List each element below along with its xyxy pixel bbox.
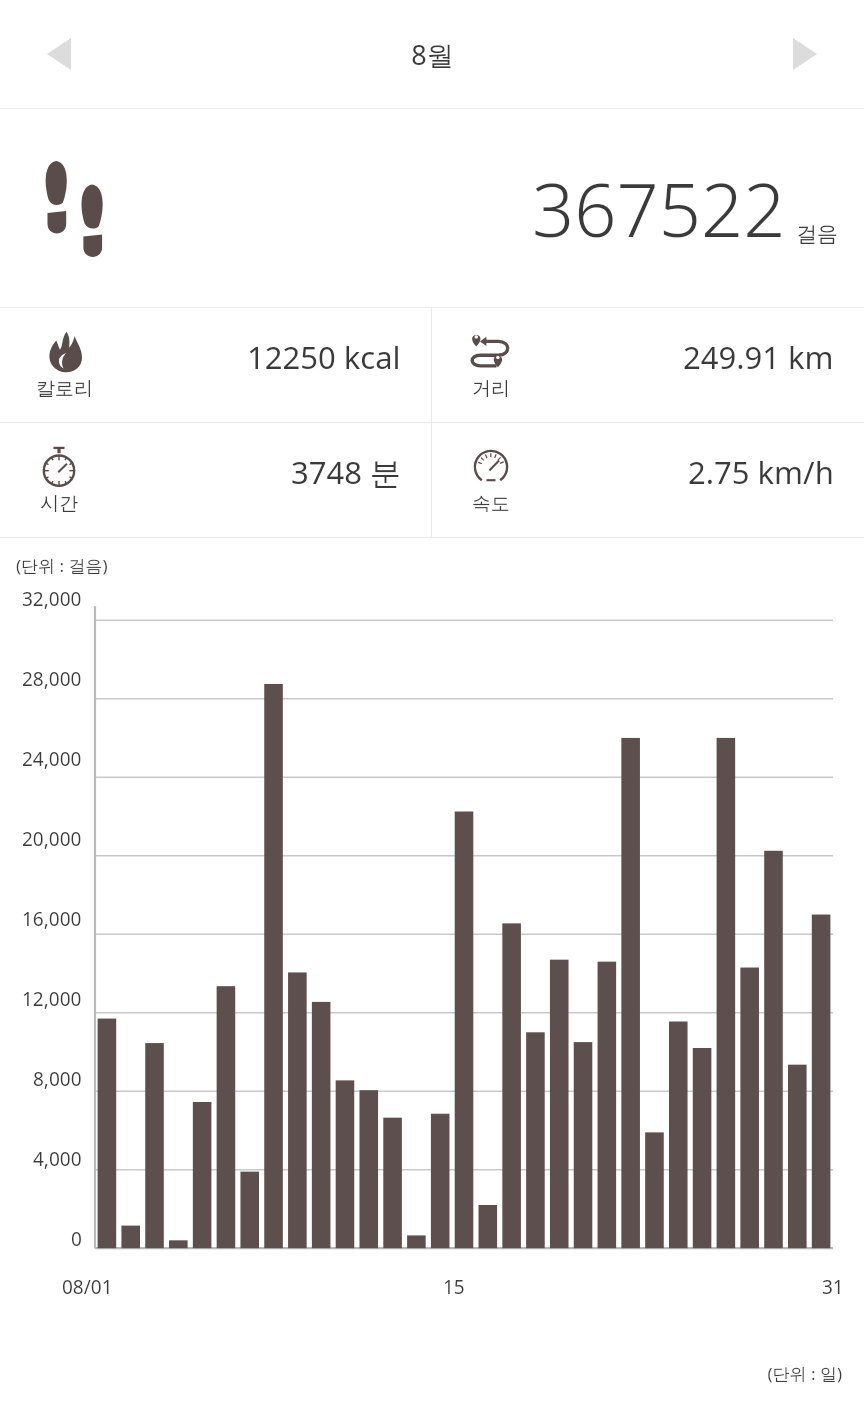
other: Distance [468, 329, 514, 375]
button[interactable]: Speed [432, 423, 864, 537]
staticText: (단위 : 일) [0, 1362, 842, 1385]
staticText: 4,000 [33, 1146, 82, 1170]
other: Time [36, 444, 82, 490]
button[interactable]: Previous month [28, 23, 90, 85]
staticText: 12,000 [22, 986, 82, 1010]
staticText: 15 [443, 1274, 465, 1300]
staticText: 8,000 [33, 1066, 82, 1090]
other: Steps [40, 159, 118, 257]
staticText: 16,000 [22, 906, 82, 930]
staticText: 28,000 [22, 666, 82, 690]
staticText: 08/01 [62, 1274, 113, 1300]
staticText: 24,000 [22, 746, 82, 770]
staticText: 20,000 [22, 826, 82, 850]
staticText: 거리 [472, 377, 510, 401]
staticText: 31 [822, 1274, 844, 1300]
staticText: 367522 [532, 158, 786, 259]
staticText: 12250 kcal [247, 336, 401, 378]
other: Calories [42, 329, 88, 375]
staticText: 칼로리 [36, 377, 93, 401]
staticText: (단위 : 걸음) [16, 554, 108, 577]
staticText: 시간 [40, 492, 78, 516]
staticText: 0 [71, 1226, 82, 1250]
button[interactable]: Time [0, 423, 431, 537]
button[interactable]: Steps [0, 109, 864, 307]
staticText: 걸음 [796, 221, 838, 247]
button[interactable]: Next month [774, 23, 836, 85]
staticText: 2.75 km/h [688, 451, 834, 493]
staticText: 3748 분 [291, 451, 401, 493]
staticText: 249.91 km [683, 336, 834, 378]
other: Speed [468, 444, 514, 490]
staticText: 8월 [411, 36, 454, 73]
staticText: 속도 [472, 492, 510, 516]
button[interactable]: Calories [0, 308, 431, 422]
button[interactable]: Distance [432, 308, 864, 422]
staticText: 32,000 [22, 586, 82, 610]
